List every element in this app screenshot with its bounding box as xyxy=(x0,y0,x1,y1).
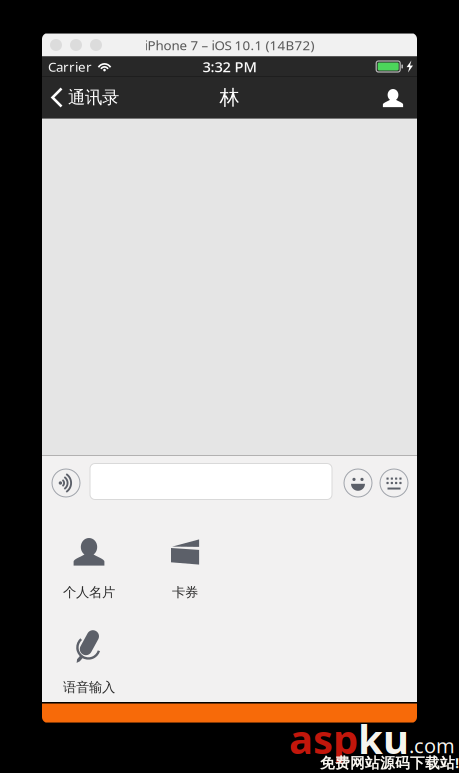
staticText: 免费网站源码下载站! xyxy=(320,753,459,772)
button[interactable]: Emoji xyxy=(344,469,372,497)
staticText: 通讯录 xyxy=(68,87,119,108)
button[interactable] xyxy=(90,463,332,499)
staticText: 语音输入 xyxy=(63,679,115,695)
button[interactable]: 通讯录 xyxy=(42,76,125,118)
staticText: asp xyxy=(289,712,358,765)
staticText: Carrier xyxy=(48,58,92,75)
button[interactable]: Contact info xyxy=(373,76,417,118)
staticText: iPhone 7 – iOS 10.1 (14B72) xyxy=(144,36,314,54)
staticText: 个人名片 xyxy=(63,584,115,600)
staticText: 卡券 xyxy=(172,584,198,600)
staticText: 林 xyxy=(219,85,239,110)
staticText: ku xyxy=(358,712,409,765)
button[interactable]: 个人名片 xyxy=(47,536,131,602)
button[interactable]: 语音输入 xyxy=(47,631,131,697)
button[interactable]: 卡券 xyxy=(143,536,227,602)
staticText: .com xyxy=(409,732,455,759)
staticText: 3:32 PM xyxy=(202,57,256,76)
button[interactable]: Voice message xyxy=(52,469,80,497)
button[interactable]: Keyboard xyxy=(380,469,408,497)
